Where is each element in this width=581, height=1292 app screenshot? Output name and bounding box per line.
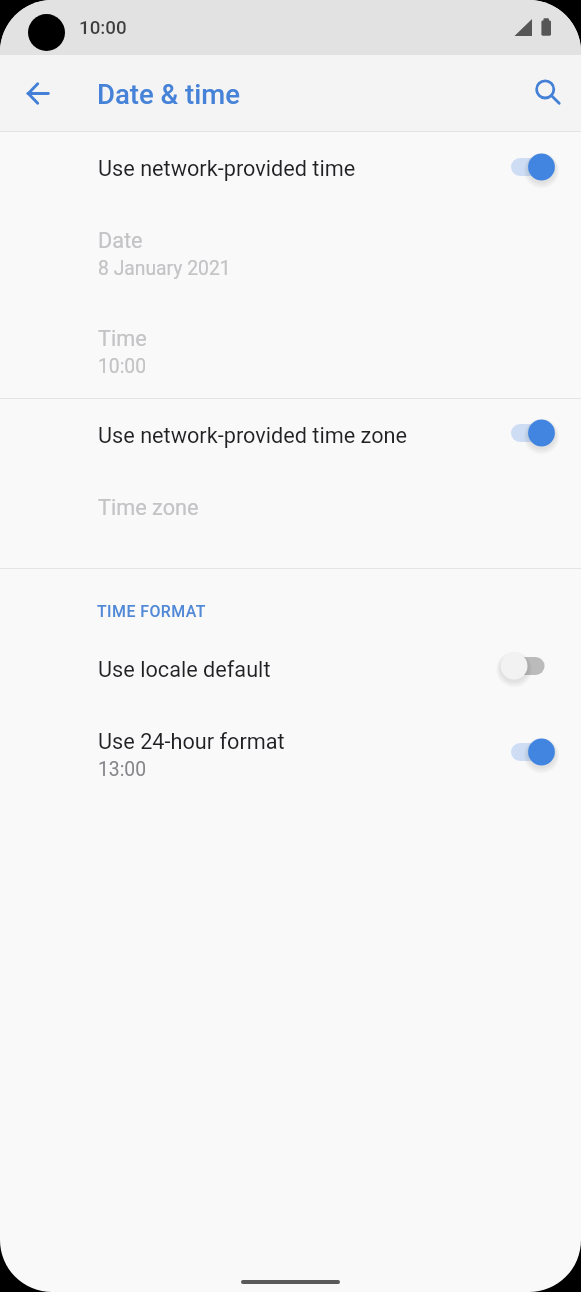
button[interactable]: Time zone	[0, 478, 581, 536]
button[interactable]: Search	[521, 65, 569, 113]
staticText: Date	[98, 228, 143, 253]
staticText: Use 24-hour format	[98, 729, 285, 754]
button[interactable]: Date	[0, 213, 581, 295]
button[interactable]: Use network-provided time zone, on	[499, 409, 560, 457]
button[interactable]: Back	[14, 68, 62, 116]
staticText: Time zone	[98, 495, 199, 520]
staticText: Date & time	[97, 78, 240, 110]
staticText: Use locale default	[98, 657, 271, 682]
staticText: Use network-provided time	[98, 156, 356, 181]
button[interactable]: Use network-provided time zone	[0, 406, 581, 464]
staticText: 10:00	[79, 17, 127, 39]
button[interactable]: Use locale default	[0, 640, 581, 698]
staticText: Time	[98, 326, 147, 351]
staticText: Use network-provided time zone	[98, 423, 408, 448]
button[interactable]: Use locale default, off	[499, 642, 560, 690]
button[interactable]: Use network-provided time, on	[499, 143, 560, 191]
staticText: 8 January 2021	[98, 257, 231, 280]
button[interactable]: Use 24-hour format, on	[499, 728, 560, 776]
staticText: 13:00	[98, 758, 147, 781]
button[interactable]: Time	[0, 311, 581, 393]
staticText: 10:00	[98, 355, 147, 378]
button[interactable]: Use 24-hour format	[0, 714, 581, 796]
staticText: TIME FORMAT	[97, 602, 206, 621]
button[interactable]: Use network-provided time	[0, 139, 581, 197]
